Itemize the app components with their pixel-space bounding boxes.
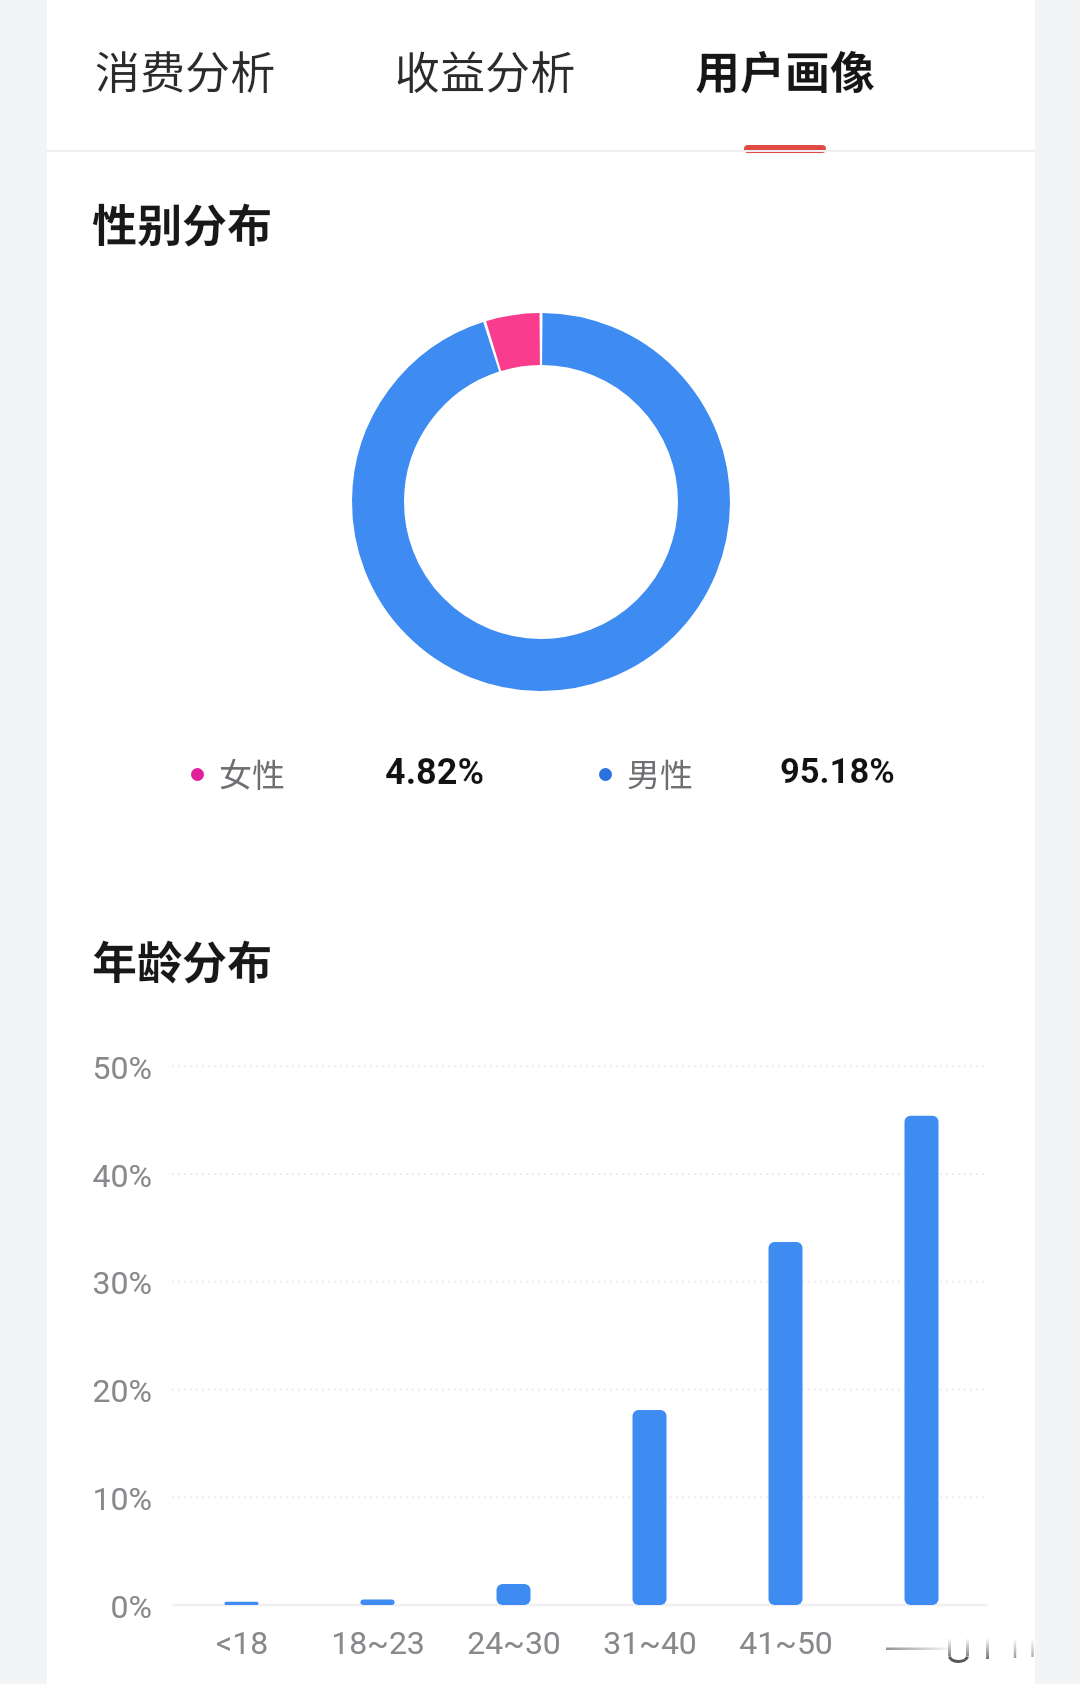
staticText: 31~40 <box>580 1624 720 1662</box>
staticText: 95.18% <box>780 751 895 791</box>
staticText: 24~30 <box>444 1624 584 1662</box>
staticText: 用户画像 <box>695 37 876 102</box>
staticText: 10% <box>61 1480 152 1518</box>
staticText: 女性 <box>219 749 285 797</box>
staticText: 消费分析 <box>95 37 276 102</box>
staticText: 4.82% <box>385 751 485 793</box>
staticText: 20% <box>61 1372 152 1410</box>
button[interactable]: 消费分析 <box>55 0 315 150</box>
staticText: 18~23 <box>308 1624 448 1662</box>
staticText: 收益分析 <box>395 37 576 102</box>
staticText: 男性 <box>627 749 693 797</box>
staticText: 41~50 <box>716 1624 856 1662</box>
button[interactable]: 男性 <box>593 742 903 806</box>
staticText: <18 <box>172 1624 312 1662</box>
staticText: 50% <box>61 1049 152 1087</box>
button[interactable]: 收益分析 <box>355 0 615 150</box>
staticText: 40% <box>61 1157 152 1195</box>
other: Gender distribution donut chart <box>352 313 730 691</box>
button[interactable]: 女性 <box>185 742 495 806</box>
staticText: 0% <box>61 1588 152 1626</box>
staticText: 性别分布 <box>92 190 273 255</box>
staticText: 30% <box>61 1264 152 1302</box>
staticText: 年龄分布 <box>92 927 273 992</box>
button[interactable]: 用户画像 <box>655 0 915 150</box>
